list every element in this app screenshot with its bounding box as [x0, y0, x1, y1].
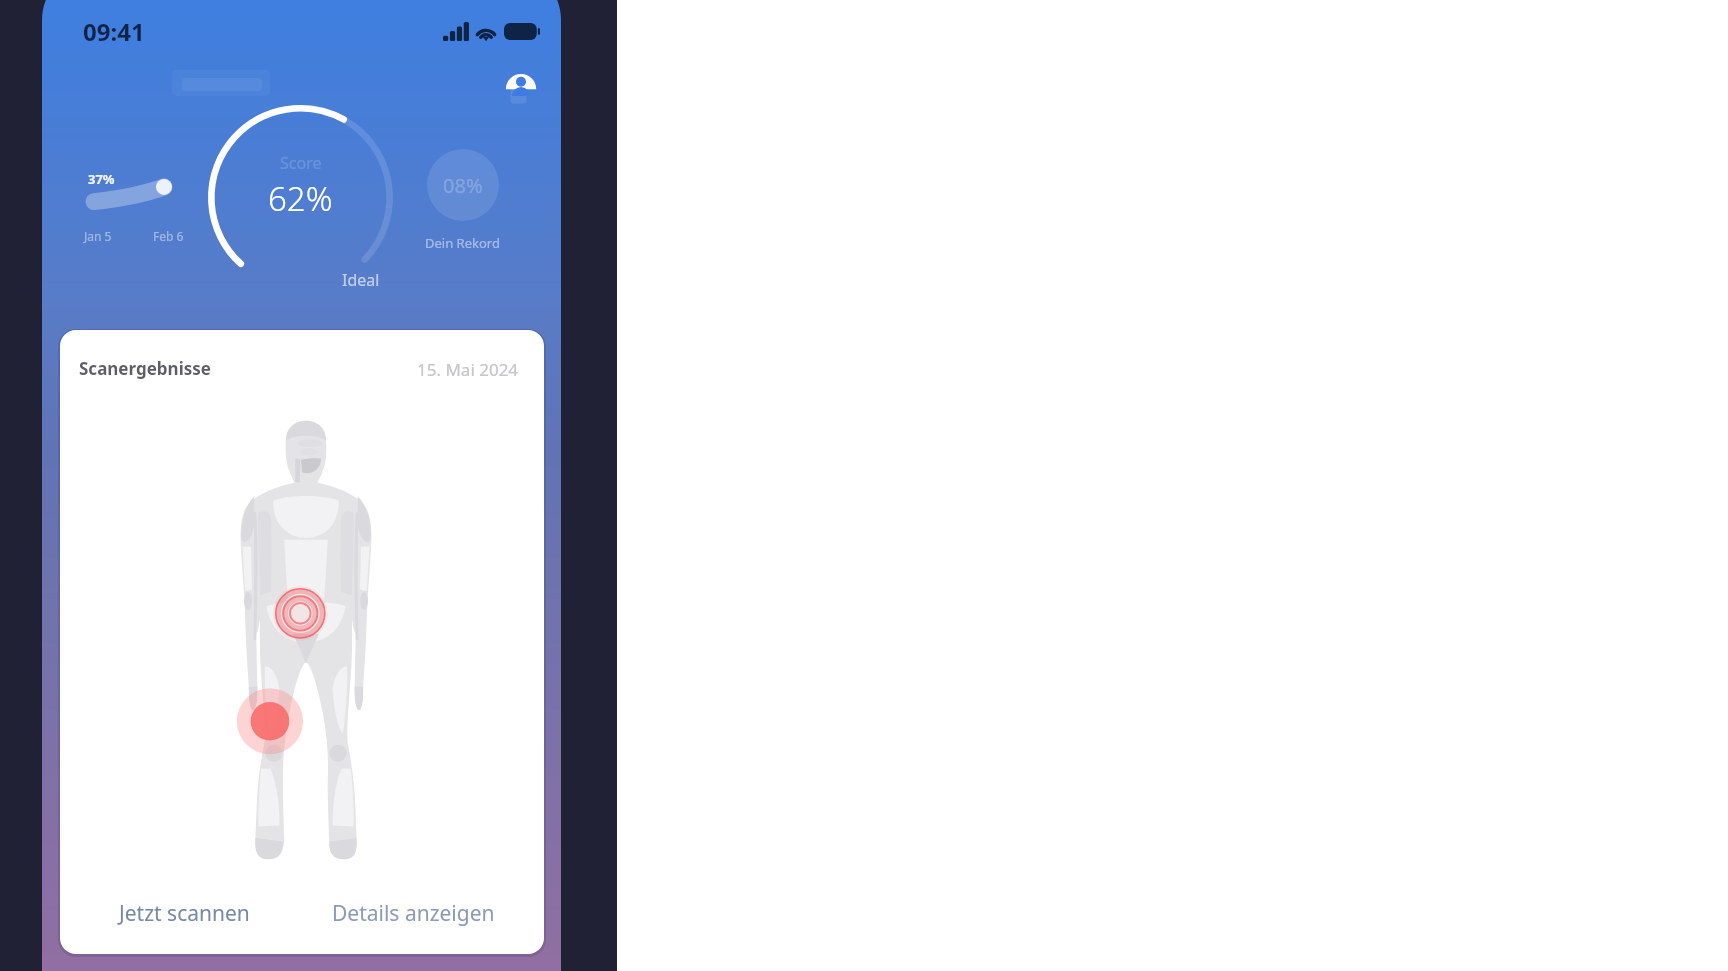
button[interactable]: Profil: [499, 64, 543, 108]
staticText: Score: [280, 152, 322, 174]
staticText: 37%: [88, 170, 115, 188]
staticText: Ideal: [342, 269, 380, 291]
staticText: 09:41: [83, 15, 145, 48]
button[interactable]: Details anzeigen: [320, 891, 507, 936]
staticText: 08%: [443, 172, 483, 199]
staticText: Dein Rekord: [425, 234, 500, 252]
staticText: Feb 6: [153, 228, 184, 244]
button[interactable]: Jetzt scannen: [107, 891, 262, 936]
staticText: 62%: [268, 176, 333, 221]
staticText: Details anzeigen: [332, 899, 495, 928]
staticText: Scanergebnisse: [79, 357, 211, 380]
staticText: Jetzt scannen: [119, 899, 250, 928]
button[interactable]: Dein Rekord: [427, 149, 499, 221]
staticText: 15. Mai 2024: [417, 358, 519, 381]
staticText: Jan 5: [84, 228, 112, 244]
